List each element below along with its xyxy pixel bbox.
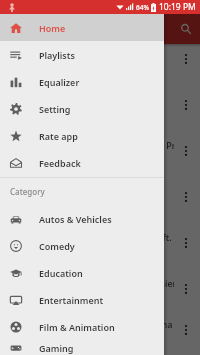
staticText: 3:42 · Audio song	[50, 153, 111, 163]
staticText: Home	[39, 22, 66, 34]
button[interactable]: More options	[174, 139, 198, 163]
button[interactable]: More options	[174, 185, 198, 209]
staticText: Film & Animation	[39, 321, 115, 333]
button[interactable]: Channa Mereya Ae Dil	[0, 174, 200, 220]
staticText: Tera Hone Laga Hoon Ajab Pre	[50, 139, 174, 151]
staticText: 64%	[136, 3, 149, 12]
button[interactable]: Home	[0, 14, 164, 41]
button[interactable]: Autos & Vehicles	[0, 205, 164, 232]
staticText: 3:44 · Audio song	[50, 245, 111, 255]
button[interactable]: Tum Hi Ho Aashiqui full soft.	[0, 220, 200, 266]
button[interactable]: Samjhawan Humpty Sharma tan	[0, 312, 200, 347]
button[interactable]: Rate app	[0, 122, 164, 149]
staticText: 3:41 · Audio song	[50, 107, 111, 117]
button[interactable]: More options	[174, 318, 198, 342]
staticText: Equalizer	[39, 76, 80, 88]
staticText: Education	[39, 267, 83, 279]
staticText: 3:45 · Audio song	[50, 291, 111, 301]
staticText: Gaming	[39, 342, 74, 354]
button[interactable]: Equalizer	[0, 68, 164, 95]
staticText: Tum Hi Ho Aashiqui full soft.	[50, 231, 172, 243]
button[interactable]: Tera Hone Laga Hoon Ajab Pre	[0, 128, 200, 174]
button[interactable]: Gaming	[0, 340, 164, 355]
staticText: Samjhawan Humpty Sharma tan	[50, 318, 174, 330]
staticText: Entertainment	[39, 294, 104, 306]
button[interactable]: Setting	[0, 95, 164, 122]
button[interactable]: Feedback	[0, 149, 164, 176]
button[interactable]: More options	[174, 47, 198, 71]
button[interactable]: Comedy	[0, 232, 164, 259]
staticText: 10:19 PM	[159, 1, 196, 13]
staticText: Setting	[39, 103, 71, 115]
button[interactable]: Kabira Yeh Jawaani Hai easier	[0, 266, 200, 312]
button[interactable]: Film & Animation	[0, 313, 164, 340]
button[interactable]: More options	[174, 231, 198, 255]
button[interactable]: Search	[175, 18, 197, 40]
staticText: Mere Rashke Qamar	[50, 47, 138, 59]
staticText: Comedy	[39, 240, 75, 252]
button[interactable]: Education	[0, 259, 164, 286]
staticText: Playlists	[39, 49, 75, 61]
button[interactable]: More options	[174, 277, 198, 301]
staticText: Feedback	[39, 157, 81, 169]
staticText: Category	[10, 186, 45, 197]
button[interactable]: Entertainment	[0, 286, 164, 313]
staticText: Autos & Vehicles	[39, 213, 112, 225]
button[interactable]: Mere Rashke Qamar	[0, 36, 200, 82]
button[interactable]: Dil Diyan Gallan Tiger	[0, 82, 200, 128]
staticText: Kabira Yeh Jawaani Hai easier	[50, 277, 174, 289]
button[interactable]: More options	[174, 93, 198, 117]
button[interactable]: Playlists	[0, 41, 164, 68]
staticText: Rate app	[39, 130, 78, 142]
